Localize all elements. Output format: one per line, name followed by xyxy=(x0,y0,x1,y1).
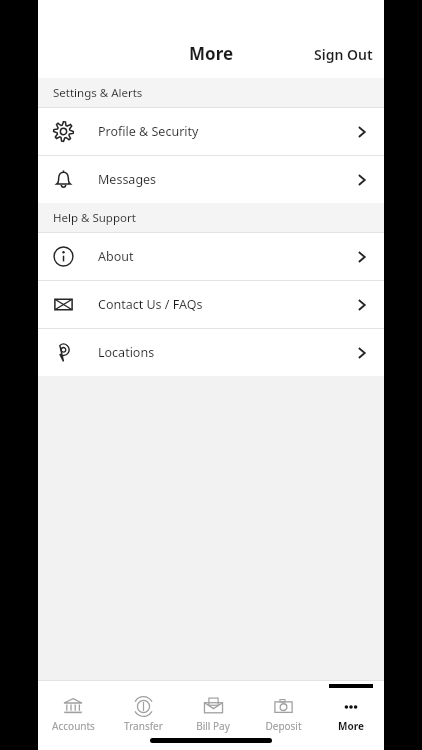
button[interactable]: Sign Out xyxy=(306,36,381,73)
staticText: Transfer xyxy=(124,719,163,733)
staticText: Deposit xyxy=(265,719,302,733)
button[interactable]: Accounts xyxy=(38,684,108,733)
staticText: Help & Support xyxy=(53,210,136,226)
staticText: Profile & Security xyxy=(98,123,199,140)
button[interactable]: Deposit xyxy=(248,684,318,733)
staticText: More xyxy=(338,719,364,733)
staticText: Accounts xyxy=(52,719,95,733)
button[interactable]: Profile & Security xyxy=(38,108,384,155)
staticText: Locations xyxy=(98,344,155,361)
staticText: Settings & Alerts xyxy=(53,85,143,101)
staticText: Bill Pay xyxy=(196,719,230,733)
staticText: About xyxy=(98,248,134,265)
button[interactable]: Bill Pay xyxy=(178,684,248,733)
button[interactable]: Transfer xyxy=(108,684,178,733)
staticText: More xyxy=(189,42,234,65)
staticText: Sign Out xyxy=(314,45,373,64)
button[interactable]: Messages xyxy=(38,156,384,203)
button[interactable]: About xyxy=(38,233,384,280)
button[interactable]: Contact Us / FAQs xyxy=(38,281,384,328)
button[interactable]: More xyxy=(318,684,384,733)
button[interactable]: Locations xyxy=(38,329,384,376)
staticText: Contact Us / FAQs xyxy=(98,296,203,313)
staticText: Messages xyxy=(98,171,157,188)
